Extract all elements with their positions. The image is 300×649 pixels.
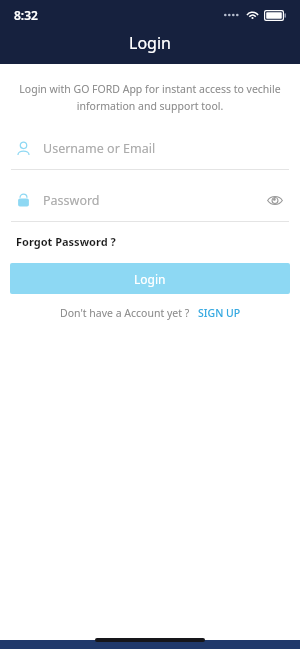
staticText: Don't have a Account yet ? xyxy=(60,306,190,320)
staticText: Forgot Password ? xyxy=(16,234,116,249)
button[interactable]: SIGN UP xyxy=(198,304,241,322)
button[interactable]: Forgot Password ? xyxy=(16,231,116,252)
button[interactable]: Login xyxy=(10,263,290,294)
staticText: Username or Email xyxy=(43,140,156,157)
button[interactable]: Show password xyxy=(264,189,286,211)
staticText: Login with GO FORD App for instant acces… xyxy=(14,82,286,113)
staticText: Login xyxy=(134,271,166,287)
staticText: Password xyxy=(43,192,100,209)
button[interactable]: Password xyxy=(0,185,300,222)
button[interactable]: Username or Email xyxy=(0,133,300,170)
staticText: SIGN UP xyxy=(198,306,241,320)
staticText: 8:32 xyxy=(14,7,38,23)
staticText: Login xyxy=(129,32,171,54)
